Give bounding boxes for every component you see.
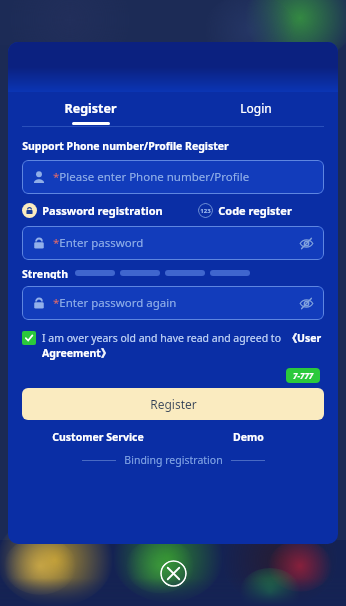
button[interactable]: Register: [8, 92, 173, 126]
staticText: Password registration: [42, 203, 163, 218]
staticText: 123: [200, 207, 211, 215]
button[interactable]: *Please enter Phone number/Profile: [22, 160, 324, 194]
staticText: Support Phone number/Profile Register: [22, 139, 229, 153]
staticText: Demo: [233, 430, 264, 444]
staticText: Strength: [22, 267, 68, 279]
button[interactable]: Demo: [173, 430, 324, 444]
button[interactable]: 7-777: [286, 368, 320, 383]
staticText: Register: [64, 100, 117, 117]
button[interactable]: *Enter password: [22, 226, 324, 260]
button[interactable]: Password registration: [22, 203, 163, 218]
button[interactable]: Customer Service: [22, 430, 173, 444]
staticText: Login: [240, 100, 272, 116]
staticText: *Enter password: [53, 235, 144, 251]
staticText: I am over years old and have read and ag…: [42, 331, 324, 360]
button[interactable]: Binding registration: [22, 453, 324, 467]
staticText: Customer Service: [52, 430, 144, 444]
staticText: Register: [150, 396, 197, 412]
staticText: Code register: [218, 203, 292, 218]
button[interactable]: Login: [173, 92, 338, 126]
button[interactable]: Register: [22, 388, 324, 420]
staticText: 7-777: [293, 370, 314, 381]
button[interactable]: I am over years old and have read and ag…: [22, 331, 324, 360]
staticText: *Please enter Phone number/Profile: [53, 169, 250, 185]
button[interactable]: 123: [198, 203, 292, 218]
button[interactable]: Close: [160, 560, 187, 587]
staticText: Binding registration: [124, 453, 223, 467]
staticText: *Enter password again: [53, 295, 177, 311]
button[interactable]: *Enter password again: [22, 286, 324, 320]
